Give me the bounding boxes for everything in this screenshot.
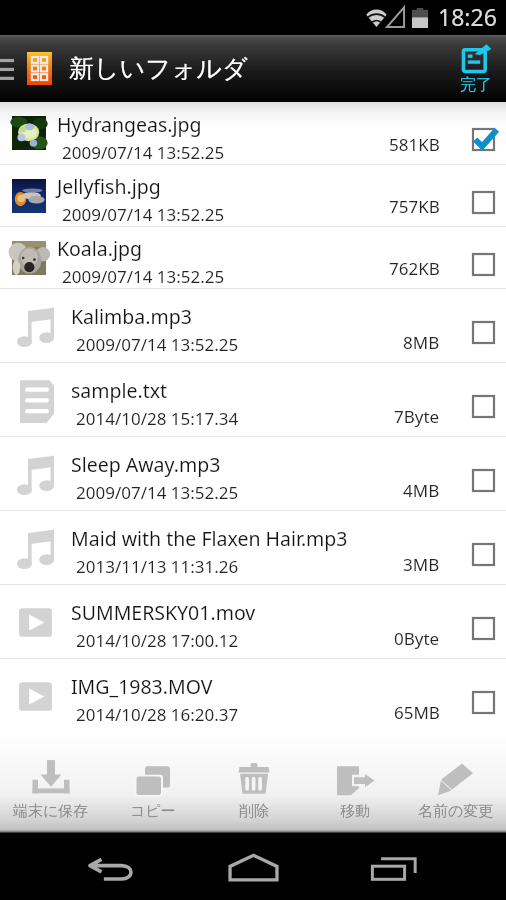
staticText: 8MB bbox=[403, 331, 440, 354]
staticText: sample.txt bbox=[71, 377, 168, 404]
button[interactable]: コピー bbox=[102, 732, 203, 833]
button[interactable]: Hydrangeas.jpg bbox=[0, 102, 506, 164]
staticText: 2014/10/28 16:20.37 bbox=[76, 703, 239, 726]
staticText: Kalimba.mp3 bbox=[71, 303, 192, 330]
button[interactable]: Home bbox=[172, 835, 334, 899]
staticText: Hydrangeas.jpg bbox=[57, 111, 202, 138]
staticText: Maid with the Flaxen Hair.mp3 bbox=[71, 525, 348, 552]
staticText: Jellyfish.jpg bbox=[57, 173, 161, 200]
staticText: SUMMERSKY01.mov bbox=[71, 599, 256, 626]
button[interactable]: Select bbox=[466, 185, 500, 219]
staticText: 2014/10/28 17:00.12 bbox=[76, 629, 239, 652]
button[interactable]: Recent apps bbox=[334, 835, 454, 899]
button[interactable]: Select bbox=[466, 389, 500, 423]
staticText: 2009/07/14 13:52.25 bbox=[76, 481, 239, 504]
staticText: 2009/07/14 13:52.25 bbox=[62, 203, 225, 226]
staticText: 65MB bbox=[394, 701, 440, 724]
staticText: 3MB bbox=[403, 553, 440, 576]
staticText: 0Byte bbox=[394, 627, 440, 650]
button[interactable]: SUMMERSKY01.mov bbox=[0, 585, 506, 658]
staticText: コピー bbox=[130, 802, 176, 821]
staticText: 2014/10/28 15:17.34 bbox=[76, 407, 239, 430]
staticText: 完了 bbox=[460, 75, 492, 95]
staticText: IMG_1983.MOV bbox=[71, 673, 213, 700]
button[interactable]: Maid with the Flaxen Hair.mp3 bbox=[0, 511, 506, 584]
button[interactable]: Select bbox=[466, 611, 500, 645]
staticText: 757KB bbox=[389, 195, 440, 218]
staticText: 2013/11/13 11:31.26 bbox=[76, 555, 239, 578]
button[interactable]: Select bbox=[466, 247, 500, 281]
button[interactable]: Jellyfish.jpg bbox=[0, 165, 506, 226]
staticText: 18:26 bbox=[438, 1, 497, 32]
staticText: 2009/07/14 13:52.25 bbox=[76, 333, 239, 356]
button[interactable]: Select bbox=[466, 463, 500, 497]
button[interactable]: Select bbox=[466, 315, 500, 349]
button[interactable]: Koala.jpg bbox=[0, 227, 506, 288]
button[interactable]: 削除 bbox=[203, 732, 304, 833]
staticText: 新しいフォルダ bbox=[69, 53, 248, 84]
staticText: 削除 bbox=[239, 802, 269, 821]
button[interactable]: 名前の変更 bbox=[405, 732, 506, 833]
button[interactable]: Sleep Away.mp3 bbox=[0, 437, 506, 510]
staticText: 7Byte bbox=[394, 405, 440, 428]
button[interactable]: 移動 bbox=[304, 732, 405, 833]
staticText: 581KB bbox=[389, 133, 440, 156]
button[interactable]: Select bbox=[466, 685, 500, 719]
button[interactable]: 端末に保存 bbox=[0, 732, 102, 833]
button[interactable]: Select bbox=[466, 122, 500, 156]
button[interactable]: IMG_1983.MOV bbox=[0, 659, 506, 732]
button[interactable]: sample.txt bbox=[0, 363, 506, 436]
staticText: 名前の変更 bbox=[418, 802, 494, 821]
staticText: 端末に保存 bbox=[13, 802, 89, 821]
button[interactable]: Kalimba.mp3 bbox=[0, 289, 506, 362]
staticText: 4MB bbox=[403, 479, 440, 502]
button[interactable]: Select bbox=[466, 537, 500, 571]
button[interactable]: Up bbox=[0, 35, 58, 102]
staticText: 762KB bbox=[389, 257, 440, 280]
staticText: Koala.jpg bbox=[57, 235, 143, 262]
button[interactable]: 完了 bbox=[446, 35, 506, 102]
staticText: 2009/07/14 13:52.25 bbox=[62, 141, 225, 164]
staticText: Sleep Away.mp3 bbox=[71, 451, 221, 478]
button[interactable]: Back bbox=[52, 835, 172, 899]
staticText: 移動 bbox=[340, 802, 370, 821]
staticText: 2009/07/14 13:52.25 bbox=[62, 265, 225, 288]
